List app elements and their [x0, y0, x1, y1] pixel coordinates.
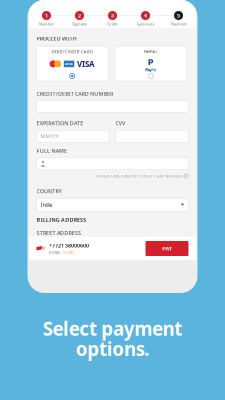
staticText: Number	[39, 21, 54, 26]
staticText: FULL NAME	[36, 147, 67, 154]
button[interactable]: PAYPAL	[115, 46, 186, 81]
staticText: VISA	[77, 59, 95, 69]
staticText: WHERE CAN I FIND MY CREDIT CARD NUMBER	[96, 173, 182, 179]
staticText: 2	[78, 12, 81, 19]
staticText: PROCEED WITH	[36, 35, 77, 42]
button[interactable]: MM/YY	[36, 130, 109, 142]
button[interactable]: DEBIT/CREDIT CARD	[36, 46, 108, 81]
staticText: DEBIT/CREDIT CARD	[51, 49, 93, 54]
staticText: 4	[144, 12, 147, 19]
staticText: CREDIT/DEBIT CARD NUMBER	[36, 90, 113, 97]
button[interactable]	[36, 101, 188, 113]
staticText: 1	[45, 12, 48, 19]
staticText: EXPIRATION DATE	[36, 120, 83, 127]
staticText: MM/YY	[40, 133, 58, 140]
staticText: ?	[186, 174, 187, 178]
staticText: STREET ADDRESS	[36, 229, 81, 236]
staticText: Operator	[71, 21, 87, 26]
staticText: +7721 58000600	[49, 242, 89, 249]
staticText: CVV	[115, 120, 125, 127]
button[interactable]: PAY	[145, 241, 188, 256]
staticText: P	[148, 55, 154, 68]
staticText: 5 USD	[63, 250, 74, 255]
staticText: options.	[76, 336, 149, 361]
staticText: AMEX	[65, 62, 73, 66]
staticText: BILLING ADDRESS	[36, 216, 86, 223]
staticText: Order	[107, 21, 118, 26]
button[interactable]	[115, 130, 188, 142]
staticText: PAYPAL	[144, 49, 157, 54]
staticText: Pay	[145, 67, 151, 72]
button[interactable]: WHERE CAN I FIND MY CREDIT CARD NUMBER	[36, 173, 188, 179]
staticText: COUNTRY	[36, 188, 62, 195]
staticText: 3	[111, 12, 114, 19]
staticText: Summary	[136, 21, 154, 26]
staticText: PAY	[162, 245, 172, 252]
staticText: India	[40, 201, 52, 208]
staticText: 5	[177, 12, 180, 19]
staticText: 5 USD -	[49, 250, 62, 255]
button[interactable]	[36, 158, 188, 170]
staticText: Pal	[151, 67, 156, 72]
button[interactable]: India	[36, 198, 188, 211]
staticText: Select payment	[43, 316, 182, 341]
staticText: Payment	[171, 21, 186, 26]
